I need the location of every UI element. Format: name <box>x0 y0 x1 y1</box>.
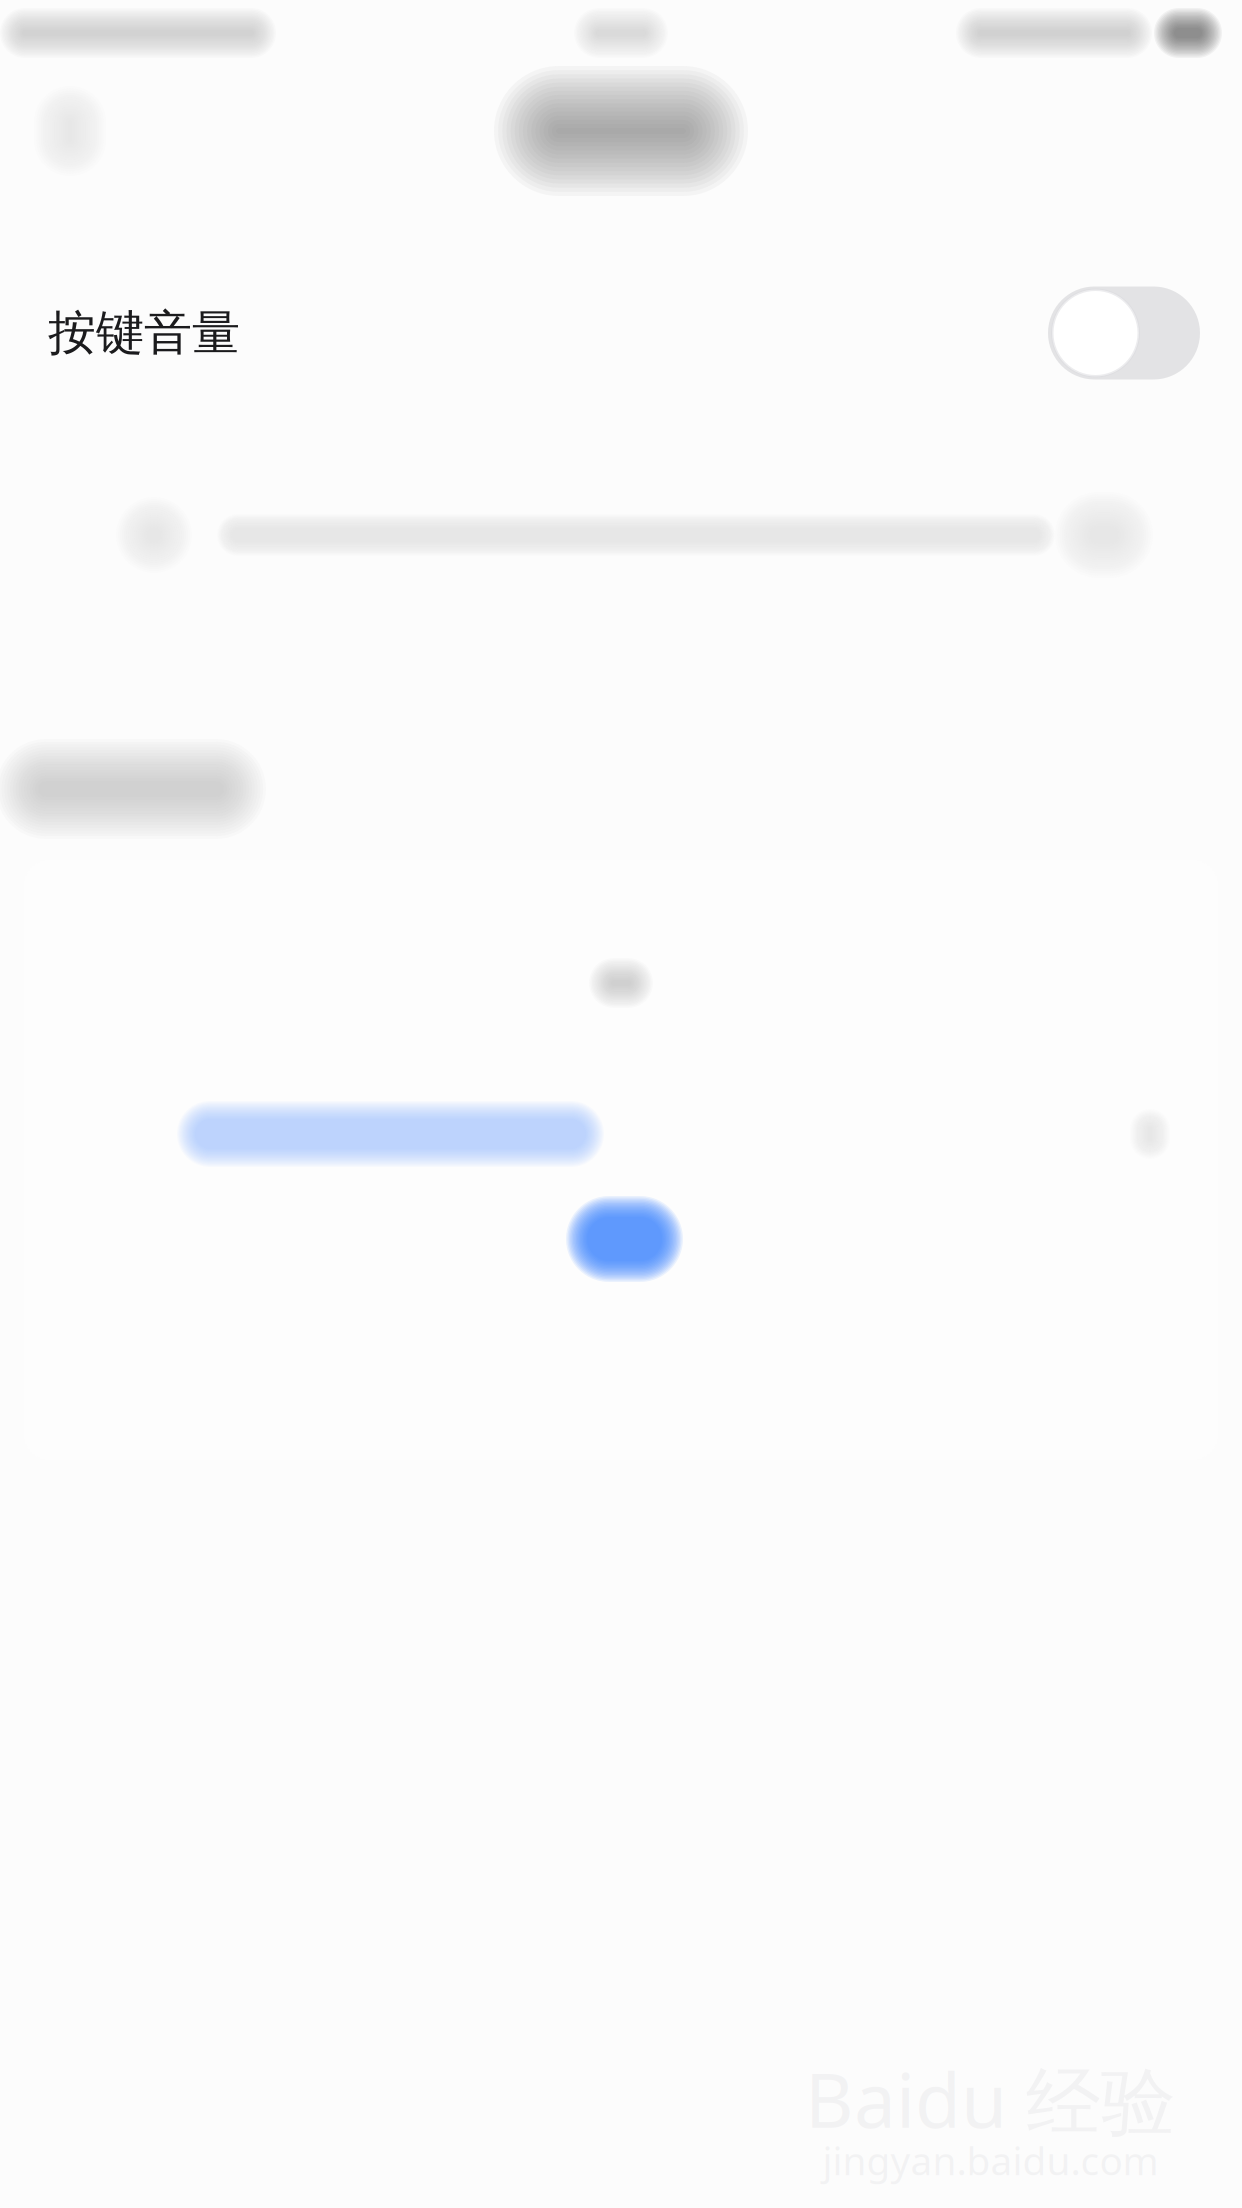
button[interactable]: 确定 <box>566 1196 683 1282</box>
button[interactable]: 按键音量 <box>22 274 1220 392</box>
staticText: 按键音量 <box>48 303 240 362</box>
staticText: Baidu 经验 <box>805 2049 1176 2149</box>
staticText: jingyan.baidu.com <box>822 2135 1158 2186</box>
button[interactable]: 返回 <box>20 86 120 176</box>
